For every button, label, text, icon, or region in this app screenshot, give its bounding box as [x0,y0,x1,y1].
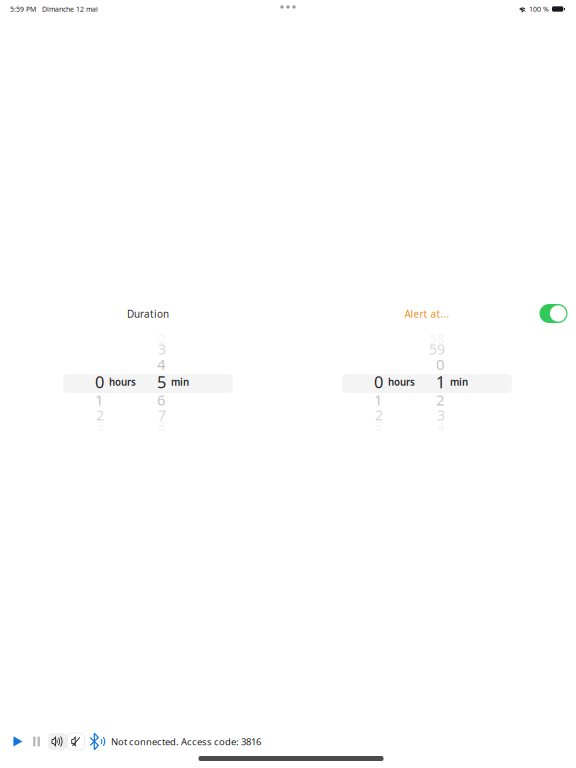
staticText: 2 [436,390,445,410]
staticText: 2 [96,405,104,425]
button[interactable]: Bluetooth [89,732,106,751]
staticText: Duration [127,307,169,321]
staticText: 4 [437,416,445,435]
staticText: Alert at... [404,307,449,321]
staticText: Dimanche 12 mai [42,4,98,14]
staticText: 3 [158,339,166,358]
staticText: 4 [157,354,166,374]
staticText: 0 [436,354,445,374]
staticText: 1 [436,371,445,393]
staticText: 3 [437,405,445,425]
staticText: hours [109,375,136,389]
staticText: 8 [158,416,166,435]
staticText: 6 [157,390,166,410]
button[interactable]: Play [13,732,23,751]
staticText: min [171,375,189,389]
staticText: 0 [95,371,104,393]
staticText: 58 [429,329,445,347]
staticText: min [450,375,468,389]
button[interactable]: Pause [33,732,40,751]
staticText: 5:59 PM [10,4,36,14]
button[interactable]: Sound on [48,733,67,750]
staticText: 3 [375,416,383,435]
button[interactable]: Mute [67,733,84,750]
staticText: 3 [96,416,104,435]
staticText: 1 [95,390,104,410]
staticText: 2 [375,405,383,425]
staticText: 2 [158,329,166,347]
staticText: 0 [374,371,383,393]
staticText: 1 [374,390,383,410]
staticText: hours [388,375,415,389]
staticText: Not connected. Access code: 3816 [111,735,261,748]
staticText: 5 [157,371,166,393]
button[interactable]: Alert enabled [539,304,567,323]
staticText: 100 % [529,4,549,14]
staticText: 59 [429,339,445,358]
staticText: 7 [158,405,166,425]
